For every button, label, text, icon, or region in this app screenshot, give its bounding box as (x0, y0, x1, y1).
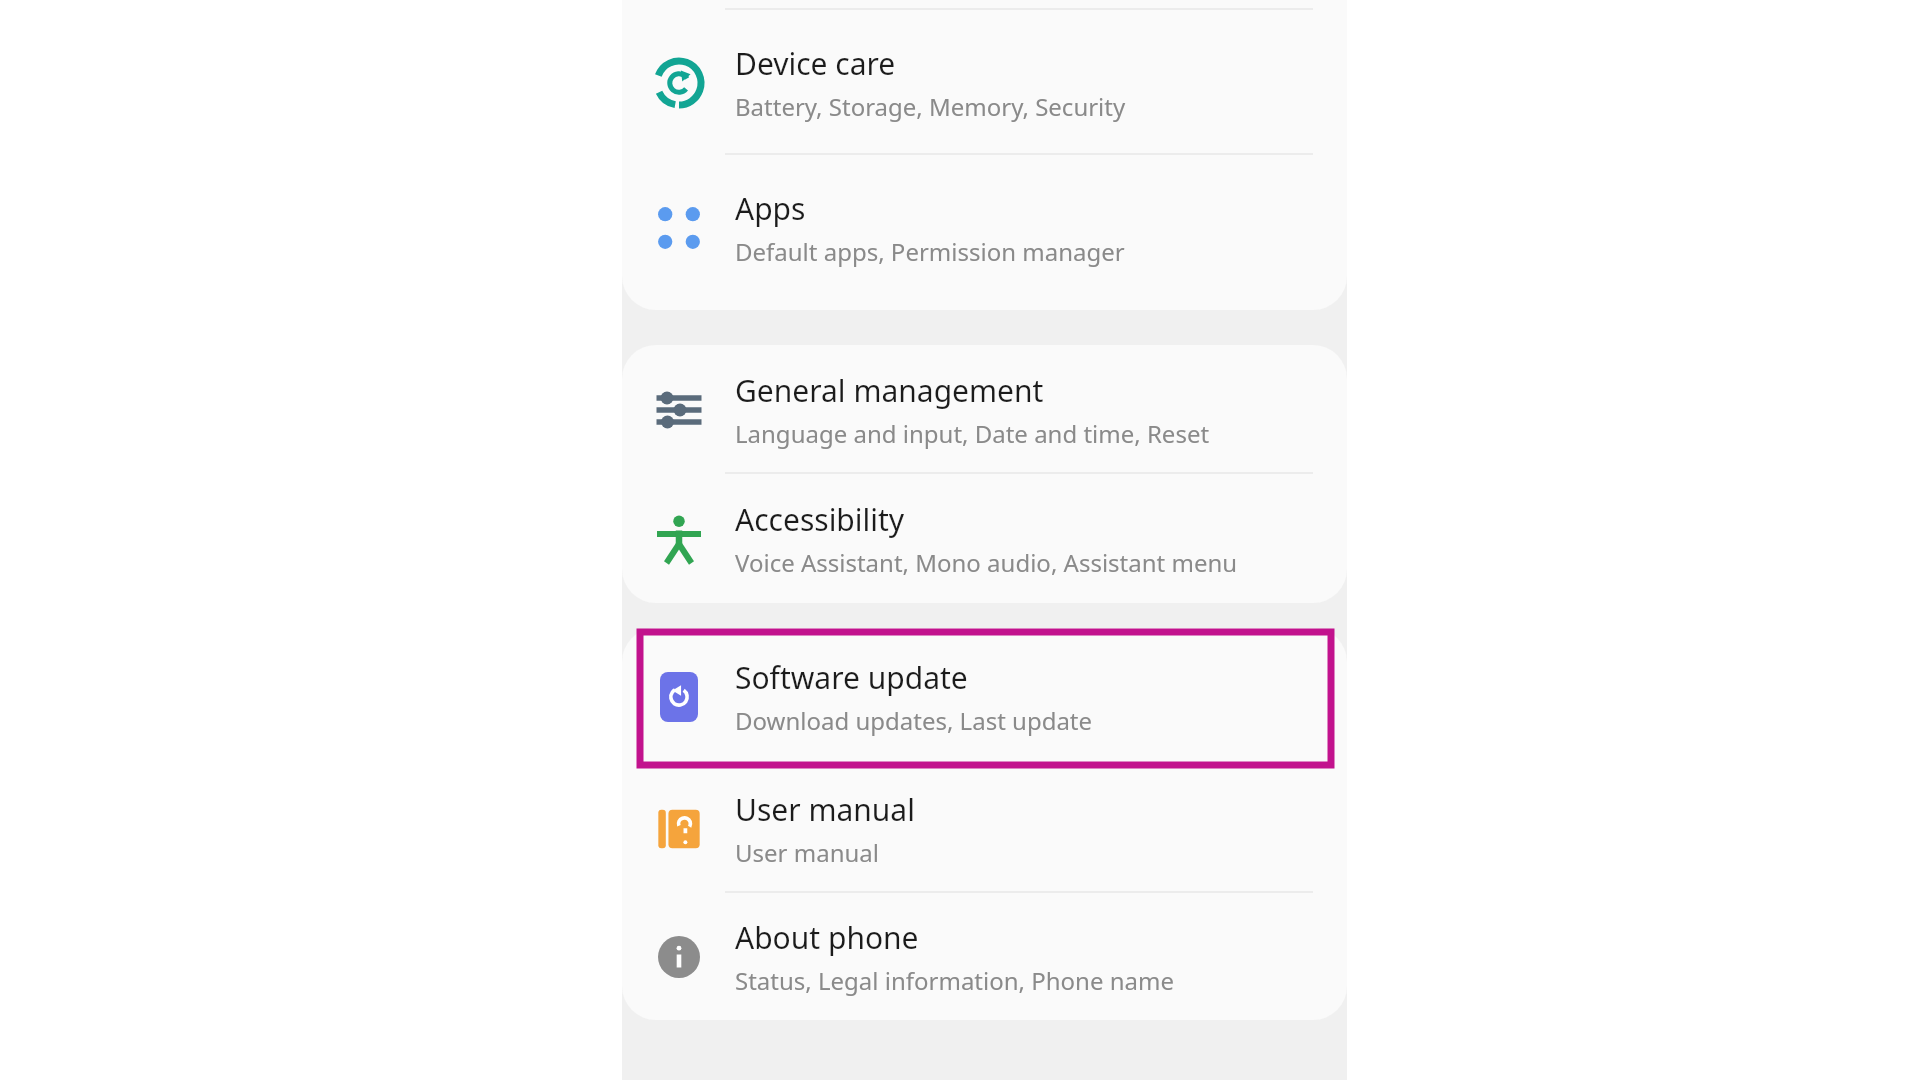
button[interactable]: Apps (622, 155, 1347, 300)
other: User manual (657, 807, 701, 851)
button[interactable]: Screen time, App timers, Wind Down (622, 0, 1347, 10)
staticText: User manual (735, 789, 915, 830)
button[interactable]: Device care (622, 10, 1347, 155)
button[interactable]: General management (622, 345, 1347, 474)
staticText: Language and input, Date and time, Reset (735, 417, 1210, 450)
other: Device care (653, 57, 705, 109)
other: Software update (660, 672, 698, 722)
other: About phone (657, 935, 701, 979)
staticText: Status, Legal information, Phone name (735, 964, 1174, 997)
button[interactable]: Accessibility (622, 474, 1347, 603)
staticText: Apps (735, 188, 806, 229)
staticText: Software update (735, 657, 968, 698)
staticText: About phone (735, 917, 919, 958)
other: Accessibility (654, 514, 704, 564)
other: Apps (656, 205, 702, 251)
other: General management (654, 385, 704, 435)
button[interactable]: User manual (622, 765, 1347, 893)
staticText: General management (735, 370, 1044, 411)
staticText: Device care (735, 43, 896, 84)
staticText: Voice Assistant, Mono audio, Assistant m… (735, 546, 1238, 579)
button[interactable]: Software update (622, 628, 1347, 765)
button[interactable]: About phone (622, 893, 1347, 1020)
staticText: Accessibility (735, 499, 905, 540)
staticText: Default apps, Permission manager (735, 235, 1125, 268)
staticText: Download updates, Last update (735, 704, 1093, 737)
staticText: User manual (735, 836, 879, 869)
staticText: Battery, Storage, Memory, Security (735, 90, 1126, 123)
